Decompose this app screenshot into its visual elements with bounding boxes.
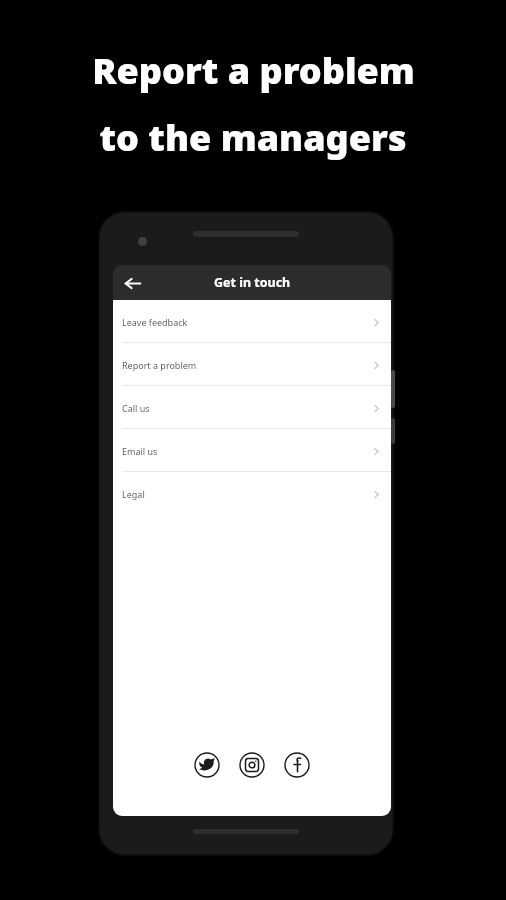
staticText: Report a problem [92, 46, 415, 95]
button[interactable]: Back [116, 267, 148, 299]
button[interactable]: Email us [113, 429, 391, 472]
staticText: Legal [122, 488, 145, 500]
button[interactable]: Call us [113, 386, 391, 429]
button[interactable]: Instagram [239, 752, 265, 778]
staticText: Get in touch [214, 274, 291, 291]
button[interactable]: Facebook [284, 752, 310, 778]
button[interactable]: Twitter [194, 752, 220, 778]
staticText: Email us [122, 445, 158, 457]
button[interactable]: Leave feedback [113, 300, 391, 343]
staticText: to the managers [99, 113, 407, 162]
button[interactable]: Legal [113, 472, 391, 515]
staticText: Call us [122, 402, 150, 414]
button[interactable]: Report a problem [113, 343, 391, 386]
staticText: Leave feedback [122, 316, 188, 328]
staticText: Report a problem [122, 359, 197, 371]
